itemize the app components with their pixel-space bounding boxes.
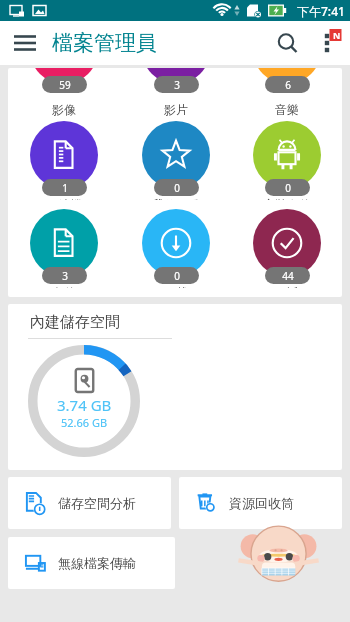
button[interactable]: More options: [308, 22, 350, 64]
button[interactable]: 3: [120, 68, 231, 121]
staticText: 影像: [52, 102, 76, 117]
button[interactable]: 3: [8, 209, 120, 297]
button[interactable]: 資源回收筒: [179, 477, 342, 529]
staticText: 3: [62, 269, 68, 283]
staticText: 6: [285, 78, 291, 92]
staticText: 1: [62, 181, 68, 195]
staticText: 安裝套件: [263, 197, 311, 200]
button[interactable]: 6: [231, 68, 342, 121]
staticText: 文件: [52, 285, 76, 288]
button[interactable]: 44: [231, 209, 342, 297]
staticText: 檔案管理員: [52, 30, 157, 56]
button[interactable]: Menu: [6, 24, 44, 62]
staticText: 下午7:41: [297, 3, 345, 19]
staticText: 內建儲存空間: [30, 313, 120, 332]
staticText: 壓縮檔: [46, 197, 82, 200]
staticText: 下載: [164, 285, 188, 288]
button[interactable]: 儲存空間分析: [8, 477, 171, 529]
staticText: 59: [59, 78, 71, 92]
button[interactable]: 1: [8, 121, 120, 209]
staticText: 我的最愛: [152, 197, 200, 200]
staticText: 0: [174, 181, 180, 195]
staticText: 最近: [275, 285, 299, 288]
staticText: 52.66 GB: [61, 415, 108, 430]
staticText: 儲存空間分析: [58, 495, 136, 511]
staticText: 影片: [164, 102, 188, 117]
staticText: 0: [174, 269, 180, 283]
staticText: 3: [174, 78, 180, 92]
staticText: 音樂: [275, 102, 299, 117]
button[interactable]: 0: [231, 121, 342, 209]
button[interactable]: 59: [8, 68, 120, 121]
staticText: 3.74 GB: [57, 395, 112, 415]
staticText: 44: [282, 269, 294, 283]
staticText: N: [333, 29, 341, 41]
staticText: 無線檔案傳輸: [58, 555, 136, 571]
staticText: 資源回收筒: [229, 495, 294, 511]
button[interactable]: Search: [266, 22, 308, 64]
button[interactable]: 無線檔案傳輸: [8, 537, 175, 589]
button[interactable]: 0: [120, 209, 231, 297]
button[interactable]: 0: [120, 121, 231, 209]
staticText: 0: [285, 181, 291, 195]
